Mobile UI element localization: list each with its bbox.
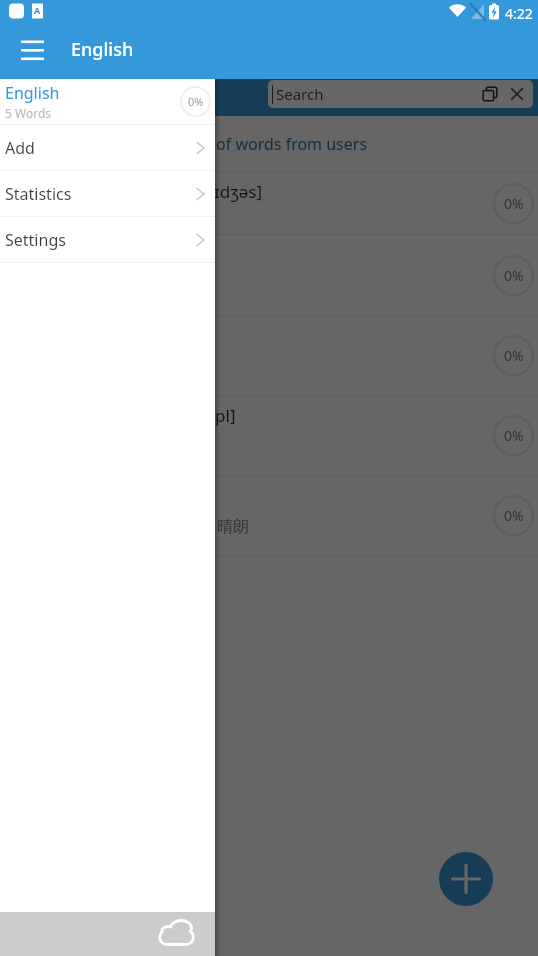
staticText: beautiful (16, 243, 88, 266)
button[interactable]: English (0, 79, 215, 124)
staticText: 0% (504, 346, 524, 365)
staticText: 0% (504, 266, 524, 285)
staticText: Settings (5, 229, 66, 251)
staticText: Add (5, 137, 35, 159)
staticText: Tap to download thousands of words from … (4, 133, 368, 155)
staticText: advantageous [ˌædvənˈteɪdʒəs] (16, 180, 263, 203)
staticText: Statistics (5, 183, 72, 205)
button[interactable]: Copy (481, 85, 499, 103)
staticText: Search (276, 84, 324, 104)
button[interactable]: Clear search (508, 85, 526, 103)
button[interactable]: advantageous [ˌædvənˈteɪdʒəs] (0, 172, 538, 234)
staticText: English (5, 82, 60, 104)
staticText: 0% (504, 426, 524, 445)
staticText: example,sample [ɪɡˈzɑːmpl] (16, 404, 236, 427)
button[interactable]: Add (0, 125, 215, 170)
button[interactable]: happy (0, 316, 538, 395)
button[interactable]: example,sample [ɪɡˈzɑːmpl] (0, 396, 538, 475)
button[interactable]: beautiful (0, 235, 538, 315)
staticText: 0% (504, 194, 524, 213)
button[interactable]: Tap to download thousands of words from … (0, 116, 538, 171)
staticText: 0% (188, 94, 204, 109)
staticText: A (34, 4, 41, 16)
button[interactable]: Open navigation drawer (6, 25, 59, 74)
button[interactable]: Statistics (0, 171, 215, 216)
staticText: 4:22 (505, 4, 533, 23)
staticText: 0% (504, 506, 524, 525)
button[interactable]: Settings (0, 217, 215, 262)
staticText: English (71, 37, 134, 62)
staticText: 阳光充足的, 晴天, 阳光明媚, 晴朗 (16, 515, 250, 537)
staticText: 5 Words (5, 105, 52, 121)
button[interactable]: Close navigation drawer (0, 0, 538, 956)
button[interactable]: Cloud sync (0, 912, 215, 956)
button[interactable]: Search (268, 80, 533, 108)
button[interactable]: Add word (439, 852, 493, 906)
button[interactable]: sunny (0, 476, 538, 555)
